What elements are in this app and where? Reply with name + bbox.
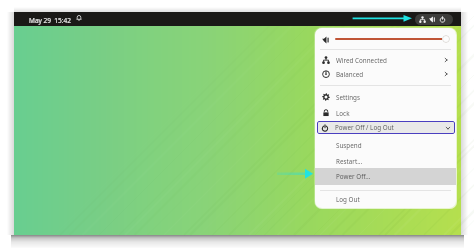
- button[interactable]: Settings: [315, 90, 456, 104]
- staticText: Settings: [336, 93, 360, 102]
- staticText: Wired Connected: [336, 56, 387, 65]
- button[interactable]: Suspend: [315, 138, 456, 152]
- button[interactable]: System status menu: [415, 14, 453, 25]
- staticText: Power Off / Log Out: [335, 123, 394, 132]
- button[interactable]: Power Off...: [315, 168, 456, 185]
- staticText: Power Off...: [336, 172, 371, 181]
- staticText: Suspend: [336, 141, 362, 150]
- button[interactable]: Lock: [315, 106, 456, 120]
- staticText: Restart...: [336, 157, 363, 166]
- button[interactable]: Power Off / Log Out: [317, 121, 455, 134]
- button[interactable]: Volume slider: [442, 35, 450, 43]
- staticText: Balanced: [336, 70, 364, 79]
- staticText: May 29 15:42: [29, 16, 71, 25]
- button[interactable]: Balanced: [315, 67, 456, 81]
- button[interactable]: Wired Connected: [315, 53, 456, 67]
- button[interactable]: Restart...: [315, 154, 456, 168]
- staticText: Log Out: [336, 195, 360, 204]
- staticText: Lock: [336, 109, 350, 118]
- button[interactable]: Log Out: [315, 192, 456, 206]
